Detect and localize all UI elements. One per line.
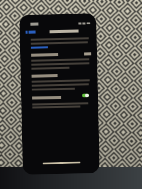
button[interactable]: Optimised battery charging (82, 93, 89, 97)
button[interactable]: Back (25, 29, 36, 35)
